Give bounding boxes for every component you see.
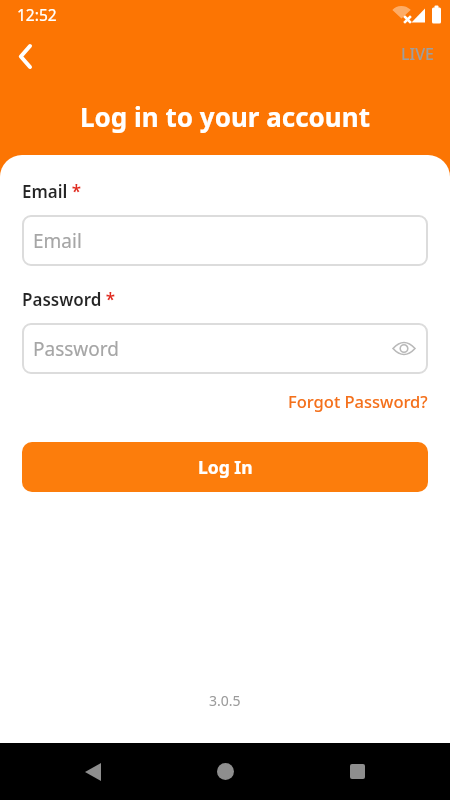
staticText: Email	[33, 228, 82, 254]
staticText: Log in to your account	[0, 99, 450, 134]
button[interactable]: Password	[22, 323, 428, 374]
button[interactable]: Email	[22, 215, 428, 266]
button[interactable]: LIVE	[401, 43, 434, 65]
staticText: Password *	[22, 288, 116, 311]
button[interactable]	[312, 743, 402, 800]
button[interactable]	[4, 36, 46, 76]
staticText: Log In	[198, 455, 253, 479]
button[interactable]	[48, 743, 138, 800]
button[interactable]	[180, 743, 270, 800]
button[interactable]: Forgot Password?	[288, 390, 428, 412]
staticText: Email *	[22, 180, 82, 203]
staticText: 3.0.5	[209, 691, 241, 710]
staticText: Password	[33, 336, 119, 362]
button[interactable]: Log In	[22, 442, 428, 492]
staticText: 12:52	[17, 4, 57, 25]
